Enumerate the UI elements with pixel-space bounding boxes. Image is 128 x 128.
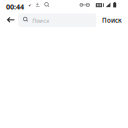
staticText: Поиск xyxy=(32,17,49,24)
button[interactable]: Back xyxy=(0,0,128,128)
button[interactable]: Поиск xyxy=(99,13,125,28)
staticText: 00:44 xyxy=(6,2,24,12)
staticText: Поиск xyxy=(102,16,122,24)
